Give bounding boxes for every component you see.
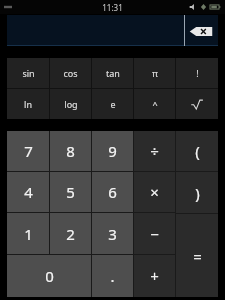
staticText: ÷ (150, 141, 159, 161)
button[interactable]: + (134, 255, 175, 297)
button[interactable]: 9 (92, 131, 133, 171)
staticText: ( (195, 141, 200, 161)
staticText: log (64, 98, 78, 110)
button[interactable]: − (134, 213, 175, 254)
button[interactable]: 3 (92, 213, 133, 254)
staticText: 7 (24, 141, 33, 161)
staticText: 0 (45, 266, 54, 286)
staticText: = (193, 246, 202, 266)
button[interactable]: 4 (7, 172, 49, 212)
staticText: 8 (66, 141, 75, 161)
staticText: ! (196, 67, 199, 79)
staticText: ) (195, 183, 200, 203)
staticText: ^ (152, 98, 158, 110)
staticText: cos (63, 67, 78, 79)
staticText: . (110, 266, 115, 286)
staticText: sin (22, 67, 35, 79)
staticText: π (152, 67, 158, 79)
staticText: 9 (108, 141, 117, 161)
staticText: ln (24, 98, 32, 110)
button[interactable]: sin (7, 58, 49, 88)
button[interactable]: ) (176, 172, 218, 213)
button[interactable]: 2 (50, 213, 91, 254)
button[interactable]: e (92, 89, 133, 119)
button[interactable]: tan (92, 58, 133, 88)
button[interactable]: ( (176, 131, 218, 171)
button[interactable]: π (134, 58, 175, 88)
button[interactable]: Square root (176, 89, 218, 119)
button[interactable]: log (50, 89, 91, 119)
button[interactable]: ^ (134, 89, 175, 119)
staticText: 4 (24, 182, 33, 202)
button[interactable]: = (176, 214, 218, 297)
staticText: 1 (24, 224, 33, 244)
button[interactable]: ln (7, 89, 49, 119)
button[interactable]: 7 (7, 131, 49, 171)
button[interactable]: Backspace (188, 21, 214, 41)
button[interactable]: Backspace (7, 15, 218, 46)
staticText: × (150, 182, 159, 202)
staticText: 11:31 (102, 2, 123, 13)
button[interactable]: ÷ (134, 131, 175, 171)
button[interactable]: ! (176, 58, 218, 88)
button[interactable]: 8 (50, 131, 91, 171)
staticText: + (150, 266, 159, 286)
staticText: 3 (108, 224, 117, 244)
button[interactable]: 0 (7, 255, 91, 297)
staticText: 2 (66, 224, 75, 244)
staticText: − (150, 224, 159, 244)
staticText: e (110, 98, 116, 110)
button[interactable]: cos (50, 58, 91, 88)
button[interactable]: 6 (92, 172, 133, 212)
button[interactable]: 5 (50, 172, 91, 212)
button[interactable]: × (134, 172, 175, 212)
staticText: 6 (108, 182, 117, 202)
staticText: tan (106, 67, 120, 79)
staticText: 5 (66, 182, 75, 202)
button[interactable]: . (92, 255, 133, 297)
button[interactable]: 1 (7, 213, 49, 254)
